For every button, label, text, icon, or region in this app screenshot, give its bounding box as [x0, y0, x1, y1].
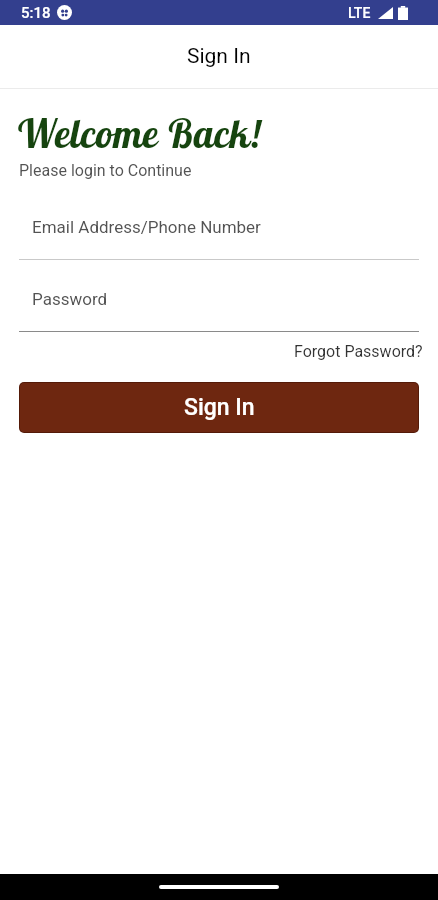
- staticText: Sign In: [184, 394, 255, 421]
- staticText: Please login to Continue: [19, 161, 192, 180]
- staticText: Password: [32, 289, 108, 309]
- staticText: Email Address/Phone Number: [32, 217, 261, 237]
- button[interactable]: Forgot Password?: [294, 342, 423, 361]
- button[interactable]: Password: [0, 289, 438, 332]
- staticText: 5:18: [21, 4, 51, 22]
- button[interactable]: Email Address/Phone Number: [0, 217, 438, 260]
- staticText: Sign In: [187, 44, 251, 69]
- staticText: Welcome Back!: [16, 109, 263, 158]
- staticText: LTE: [348, 5, 371, 21]
- button[interactable]: Home: [159, 885, 279, 889]
- button[interactable]: Sign In: [20, 383, 418, 432]
- other: Alarm: [57, 5, 72, 20]
